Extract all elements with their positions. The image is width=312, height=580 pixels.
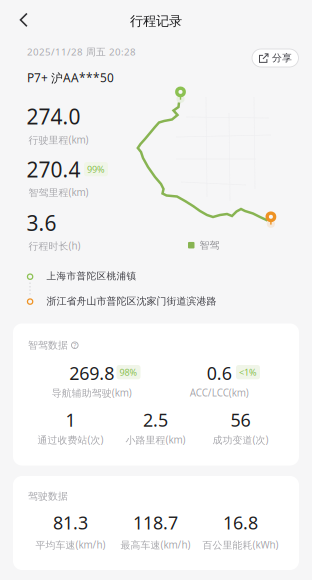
- staticText: 智驾里程(km): [28, 185, 88, 199]
- staticText: ?: [73, 340, 76, 350]
- staticText: <1%: [239, 366, 257, 378]
- staticText: 上海市普陀区桃浦镇: [46, 270, 136, 282]
- staticText: 99%: [87, 163, 105, 175]
- staticText: 98%: [119, 366, 137, 378]
- staticText: 2.5: [143, 408, 168, 432]
- staticText: 269.8: [69, 361, 114, 385]
- staticText: 平均车速(km/h): [35, 538, 105, 551]
- staticText: 行程时长(h): [28, 239, 80, 252]
- staticText: 成功变道(次): [212, 433, 268, 446]
- staticText: 16.8: [223, 510, 258, 535]
- staticText: 分享: [272, 52, 292, 64]
- staticText: 智驾数据: [28, 339, 68, 351]
- staticText: 智驾: [199, 239, 219, 251]
- staticText: 270.4: [26, 155, 80, 183]
- staticText: 0.6: [207, 361, 232, 385]
- staticText: 2025/11/28 周五 20:28: [27, 45, 136, 58]
- staticText: 81.3: [53, 510, 88, 535]
- staticText: 驾驶数据: [28, 490, 68, 502]
- button[interactable]: 分享: [252, 49, 298, 67]
- staticText: P7+ 沪AA***50: [27, 69, 114, 86]
- staticText: 小路里程(km): [125, 433, 185, 446]
- staticText: 浙江省舟山市普陀区沈家门街道滨港路: [46, 295, 216, 307]
- staticText: 1: [65, 408, 75, 432]
- staticText: 274.0: [26, 102, 80, 130]
- staticText: 最高车速(km/h): [120, 538, 190, 551]
- button[interactable]: Back: [6, 6, 42, 34]
- staticText: 行程记录: [130, 13, 182, 29]
- staticText: 118.7: [133, 510, 178, 535]
- staticText: 56: [230, 408, 250, 432]
- staticText: 导航辅助驾驶(km): [52, 386, 132, 399]
- staticText: 3.6: [26, 208, 56, 237]
- staticText: 百公里能耗(kWh): [202, 538, 278, 551]
- staticText: ACC/LCC(km): [190, 386, 249, 399]
- staticText: 行驶里程(km): [28, 133, 88, 146]
- staticText: 通过收费站(次): [37, 433, 103, 446]
